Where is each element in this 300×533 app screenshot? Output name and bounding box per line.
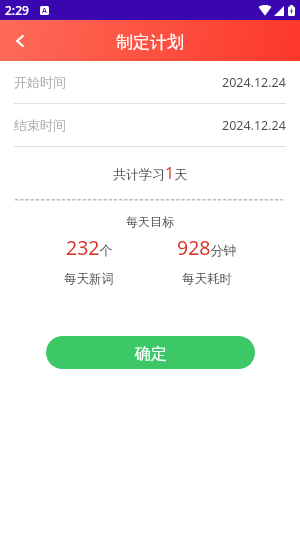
staticText: 2024.12.24 [222, 117, 286, 134]
staticText: 232个 [66, 234, 113, 261]
staticText: 共计学习1天 [113, 162, 188, 184]
staticText: 每天目标 [126, 214, 174, 229]
staticText: 开始时间 [14, 74, 66, 90]
staticText: 确定 [135, 344, 167, 364]
button[interactable]: 结束时间 [0, 104, 300, 146]
staticText: 每天新词 [64, 271, 114, 287]
staticText: 结束时间 [14, 117, 66, 133]
button[interactable]: 开始时间 [0, 61, 300, 103]
staticText: 928分钟 [177, 234, 237, 261]
staticText: A [42, 6, 47, 15]
staticText: 每天耗时 [182, 271, 232, 287]
staticText: 制定计划 [116, 32, 184, 53]
button[interactable]: 确定 [46, 336, 255, 369]
button[interactable]: Back [0, 21, 40, 61]
staticText: 2024.12.24 [222, 74, 286, 91]
staticText: 2:29 [5, 2, 29, 18]
